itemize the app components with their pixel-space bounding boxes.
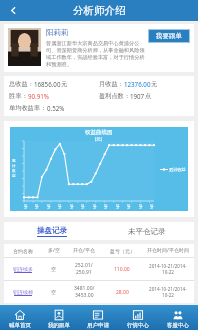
staticText: 10- 21	[81, 204, 85, 210]
button[interactable]: 我要跟单	[148, 29, 190, 43]
staticText: 操盘记录	[37, 226, 67, 235]
staticText: 益	[12, 174, 16, 179]
staticText: 10- 21	[116, 204, 120, 210]
staticText: 空	[51, 289, 56, 295]
staticText: 2014-10-21/2014-	[149, 263, 187, 269]
button[interactable]: 喊单首页	[0, 305, 39, 330]
staticText: 我的跟单	[48, 322, 70, 329]
staticText: 10- 21	[104, 204, 108, 210]
staticText: 12376.00	[124, 80, 151, 88]
staticText: 胜率：	[9, 92, 28, 100]
staticText: 累计收益	[169, 167, 186, 172]
staticText: 客服中心	[167, 322, 189, 329]
button[interactable]: 铝连续多	[4, 258, 194, 280]
staticText: 阳莉莉	[46, 28, 69, 37]
staticText: 10- 21	[70, 204, 74, 210]
staticText: 月收益：	[99, 80, 124, 88]
staticText: 开仓/平仓	[73, 247, 95, 254]
staticText: 1907	[130, 92, 145, 100]
staticText: 10- 21	[58, 204, 62, 210]
staticText: 2014-10-21/2014-	[149, 286, 187, 292]
button[interactable]: 操盘记录	[4, 222, 99, 240]
staticText: 10- 21	[35, 204, 39, 210]
staticText: 10- 21	[127, 204, 131, 210]
staticText: 盈亏（元）	[110, 248, 135, 254]
staticText: 10- 21	[150, 204, 154, 210]
button[interactable]: 铝连续棉	[4, 281, 194, 303]
staticText: 行情中心	[127, 322, 149, 329]
staticText: 开仓时间/平仓时间	[147, 247, 189, 254]
staticText: 铝连续棉	[13, 289, 33, 295]
staticText: 点	[145, 92, 152, 100]
staticText: 收益曲线图	[85, 129, 113, 136]
staticText: 252.01/	[75, 262, 93, 269]
staticText: 250.91	[76, 269, 92, 276]
staticText: 110.00	[114, 266, 130, 273]
staticText: 3453.00	[75, 292, 94, 299]
staticText: 铝连续多	[13, 266, 33, 272]
staticText: 曾属浙江新华大宗商品交易中心黄浦分公司、资深期货商分析师，从事金融和风险领域工作…	[46, 40, 145, 68]
staticText: 10- 21	[47, 204, 51, 210]
button[interactable]: 用户申请	[78, 305, 118, 330]
staticText: 28.00	[116, 289, 129, 296]
button[interactable]: Back	[0, 0, 26, 21]
staticText: 收	[12, 169, 16, 174]
staticText: 元	[61, 80, 68, 88]
staticText: 10-22	[162, 269, 174, 275]
staticText: 3481.00/	[74, 285, 95, 292]
staticText: 合约名称	[13, 248, 33, 254]
staticText: 16856.00	[34, 80, 61, 88]
staticText: 累	[12, 159, 16, 164]
staticText: 0.52%	[47, 104, 65, 112]
button[interactable]: 我的跟单	[39, 305, 78, 330]
staticText: 总收益：	[9, 80, 34, 88]
staticText: 10- 21	[24, 204, 28, 210]
staticText: 10- 21	[139, 204, 143, 210]
staticText: 用户申请	[87, 322, 109, 329]
staticText: 10-22	[162, 292, 174, 298]
button[interactable]: 客服中心	[158, 305, 198, 330]
staticText: 90.91%	[28, 92, 49, 100]
button[interactable]: 行情中心	[118, 305, 158, 330]
staticText: 分析师介绍	[73, 4, 126, 17]
staticText: 盈利点数：	[99, 92, 130, 100]
staticText: 计	[12, 164, 16, 169]
staticText: 元	[151, 80, 158, 88]
staticText: 未平仓记录	[128, 227, 166, 236]
staticText: 我要跟单	[156, 32, 182, 40]
staticText: (元)	[95, 136, 103, 142]
button[interactable]: 未平仓记录	[99, 222, 194, 240]
staticText: 单均收益率：	[9, 104, 47, 112]
staticText: 10- 21	[93, 204, 97, 210]
staticText: 空	[51, 266, 56, 272]
staticText: 喊单首页	[9, 322, 31, 329]
staticText: 多/空	[48, 247, 60, 254]
